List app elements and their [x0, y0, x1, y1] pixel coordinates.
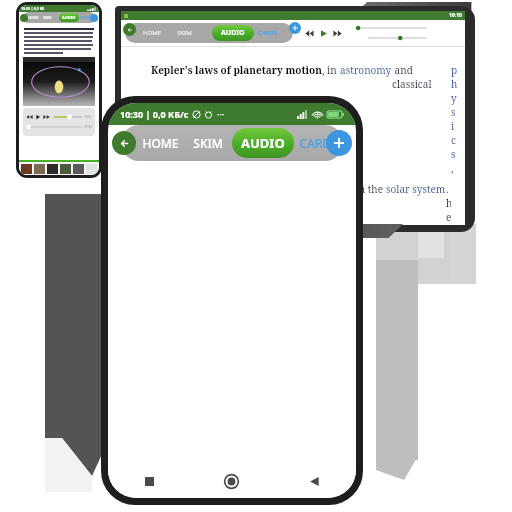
staticText: Kepler's laws of planetary motion	[151, 63, 322, 77]
button[interactable]: HOME	[136, 125, 184, 161]
staticText: CARDS	[299, 135, 338, 151]
button[interactable]: CARDS	[294, 125, 342, 161]
staticText: in the	[353, 182, 386, 196]
staticText: 1.00x	[84, 115, 92, 119]
staticText: HOME	[28, 15, 43, 20]
button[interactable]: AUDIO	[232, 128, 294, 158]
staticText: . They were	[446, 182, 451, 225]
staticText: , in	[322, 63, 340, 77]
staticText: SKIM	[43, 15, 59, 20]
button[interactable]: Back	[112, 131, 136, 155]
staticText: SKIM	[177, 29, 212, 37]
staticText: HOME	[142, 135, 179, 151]
button[interactable]: Home	[190, 464, 273, 498]
staticText: and classical	[392, 63, 451, 91]
staticText: HOME	[143, 29, 177, 37]
button[interactable]: Back	[273, 464, 356, 498]
staticText: CARDS	[258, 29, 293, 37]
staticText: CARDS	[80, 15, 96, 20]
button[interactable]: Recent apps	[108, 464, 190, 498]
staticText: ···	[217, 108, 225, 120]
staticText: AUDIO	[62, 15, 76, 20]
button[interactable]	[21, 164, 32, 174]
staticText: astronomy	[340, 63, 392, 77]
staticText: 10:30 | 0,0 КБ/с	[120, 108, 189, 120]
staticText: solar system	[386, 182, 446, 196]
staticText: AUDIO	[221, 28, 245, 38]
staticText: SKIM	[193, 135, 223, 151]
staticText: 10:30 | 0,0 КБ	[21, 6, 45, 11]
staticText: 47:52	[84, 125, 92, 129]
staticText: 19:10	[449, 12, 462, 19]
staticText: AUDIO	[241, 134, 285, 152]
button[interactable]: Add	[326, 130, 352, 156]
button[interactable]: SKIM	[184, 125, 232, 161]
